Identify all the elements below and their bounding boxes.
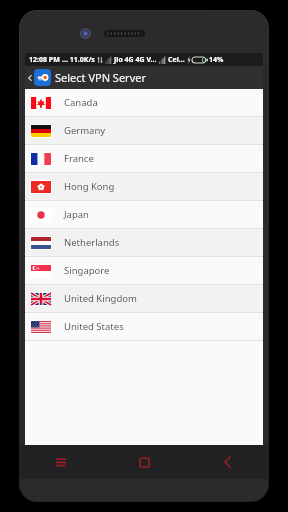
staticText: Hong Kong (64, 180, 115, 193)
staticText: France (64, 152, 94, 165)
staticText: Japan (64, 208, 89, 221)
staticText: United States (64, 320, 124, 333)
staticText: Netherlands (64, 236, 120, 249)
staticText: Select VPN Server (55, 70, 146, 85)
staticText: United Kingdom (64, 292, 137, 305)
button[interactable]: VPN app icon (34, 69, 51, 86)
button[interactable]: France (25, 145, 263, 172)
staticText: Germany (64, 124, 106, 137)
button[interactable]: Recent apps (19, 445, 103, 479)
staticText: Canada (64, 96, 98, 109)
button[interactable]: Netherlands (25, 229, 263, 256)
staticText: … 11.0K/s (62, 55, 95, 65)
button[interactable]: Back (186, 445, 269, 479)
staticText: Jio 4G 4G V… (114, 55, 157, 65)
staticText: Singapore (64, 264, 110, 277)
button[interactable]: United Kingdom (25, 285, 263, 312)
staticText: Cel… (168, 55, 185, 65)
button[interactable]: Singapore (25, 257, 263, 284)
button[interactable]: Canada (25, 89, 263, 116)
staticText: 14% (209, 55, 224, 65)
button[interactable]: Home (103, 445, 186, 479)
button[interactable]: Japan (25, 201, 263, 228)
staticText: 12:08 PM (29, 55, 60, 65)
button[interactable]: Back (25, 66, 34, 89)
button[interactable]: United States (25, 313, 263, 340)
button[interactable]: Germany (25, 117, 263, 144)
button[interactable]: Hong Kong (25, 173, 263, 200)
